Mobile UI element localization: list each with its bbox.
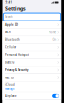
button[interactable]: Personal Hotspot	[2, 51, 61, 58]
staticText: Bluetooth	[5, 38, 20, 41]
button[interactable]: Apple ID	[2, 21, 61, 28]
staticText: Personal Hotspot	[5, 53, 29, 57]
button[interactable]: Wi‑Fi	[2, 29, 61, 36]
staticText: Face ID	[5, 76, 14, 79]
staticText: 9:41	[5, 1, 12, 4]
staticText: Home	[48, 30, 56, 34]
staticText: Battery	[5, 61, 14, 64]
staticText: Search	[5, 15, 13, 19]
button[interactable]: Cellular	[2, 44, 61, 51]
button[interactable]: Privacy & Security	[2, 66, 61, 74]
button[interactable]: Battery	[2, 59, 61, 66]
staticText: Settings	[5, 5, 26, 12]
staticText: Cellular	[5, 46, 16, 49]
staticText: On	[52, 38, 56, 41]
staticText: Privacy & Security	[5, 68, 28, 72]
staticText: Airplane	[5, 94, 17, 98]
button[interactable]: Face ID	[2, 74, 61, 81]
button[interactable]: Airplane	[2, 92, 61, 99]
staticText: Manage	[5, 87, 15, 90]
button[interactable]: Bluetooth	[2, 36, 61, 43]
staticText: Wi‑Fi	[5, 30, 11, 34]
button[interactable]: iCloud	[2, 81, 61, 92]
staticText: iCloud	[5, 83, 15, 86]
staticText: Apple ID	[5, 23, 18, 26]
